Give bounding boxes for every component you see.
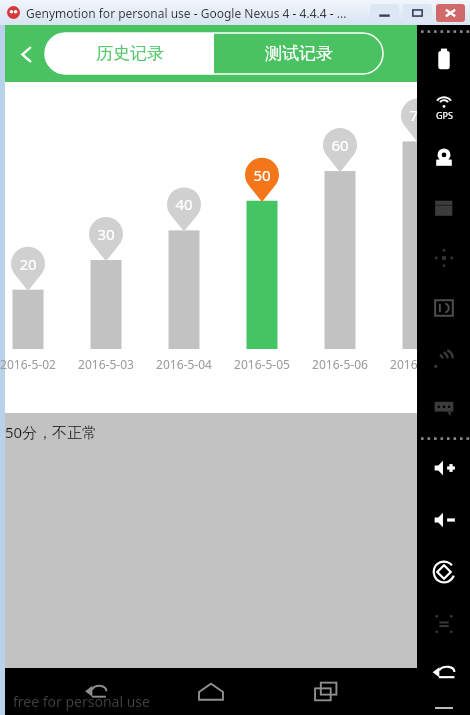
staticText: 70 [398,105,438,125]
staticText: 测试记录 [265,43,333,64]
button[interactable]: Volume up [417,442,470,494]
button[interactable]: Window control [403,4,432,22]
button[interactable]: Device ID [417,283,470,333]
staticText: 2016-5-07 [379,356,457,372]
button[interactable]: Home [179,670,243,714]
button[interactable]: Network [417,333,470,383]
staticText: 2016-5-06 [301,356,379,372]
button[interactable]: 测试记录 [214,33,383,74]
button[interactable]: Volume down [417,494,470,546]
button[interactable]: Recent apps [294,670,358,714]
button[interactable]: Window control [370,4,399,22]
staticText: 20 [8,254,48,274]
staticText: 2016-5-04 [145,356,223,372]
button[interactable]: Back [5,33,47,75]
staticText: 50 [242,165,282,185]
staticText: 60 [320,135,360,155]
button[interactable]: Close window [436,4,465,22]
staticText: 2016-5-02 [0,356,67,372]
staticText: Genymotion for personal use - Google Nex… [26,5,347,21]
staticText: free for personal use [13,692,150,711]
staticText: 2016-5-03 [67,356,145,372]
button[interactable]: Rotate screen [417,546,470,598]
staticText: 40 [164,194,204,214]
staticText: 历史记录 [96,43,164,64]
button[interactable]: Scale one to one [417,598,470,650]
button[interactable]: Back [64,670,128,714]
staticText: 50分，不正常 [5,422,98,442]
button[interactable]: Messages [417,383,470,433]
button[interactable]: GPS [417,83,470,133]
button[interactable]: Video [417,183,470,233]
button[interactable]: Back [417,650,470,696]
staticText: GPS [436,109,453,121]
button[interactable]: D-pad [417,233,470,283]
button[interactable]: Battery [417,35,470,83]
button[interactable]: Camera [417,133,470,183]
staticText: 30 [86,224,126,244]
staticText: 2016-5-05 [223,356,301,372]
button[interactable]: 历史记录 [45,33,214,74]
